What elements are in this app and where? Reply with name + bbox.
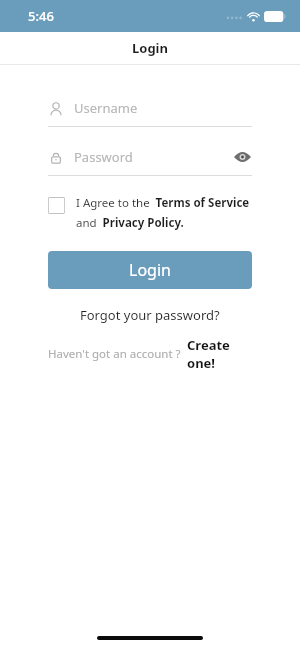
staticText: Login	[132, 39, 168, 57]
staticText: I Agree to the Terms of Service	[76, 195, 250, 211]
staticText: 5:46	[28, 7, 54, 25]
staticText: and Privacy Policy.	[76, 215, 184, 231]
button[interactable]: Username	[48, 95, 252, 121]
button[interactable]: Forgot your password?	[48, 306, 252, 324]
button[interactable]: Show password	[232, 149, 252, 165]
staticText: Create one!	[187, 336, 252, 372]
staticText: Login	[129, 259, 171, 281]
button[interactable]: Create one!	[187, 336, 252, 372]
staticText: Haven't got an account ?	[48, 346, 181, 362]
button[interactable]: Password	[48, 144, 252, 170]
staticText: Username	[74, 99, 138, 117]
button[interactable]: Login	[48, 251, 252, 289]
staticText: Forgot your password?	[80, 306, 220, 324]
staticText: Password	[74, 148, 133, 166]
button[interactable]: I Agree to the Terms of Service	[48, 195, 252, 231]
